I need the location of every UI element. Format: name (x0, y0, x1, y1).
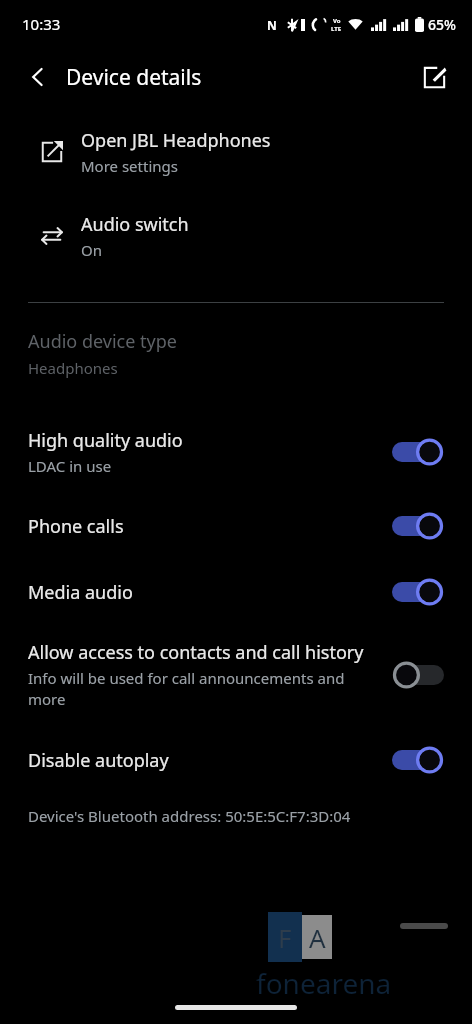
button[interactable]: On (392, 576, 444, 608)
staticText: Disable autoplay (28, 748, 169, 773)
staticText: Allow access to contacts and call histor… (28, 640, 364, 665)
button[interactable]: Media audio (0, 570, 472, 614)
staticText: Audio device type (28, 329, 177, 354)
button[interactable]: Off (392, 659, 444, 691)
staticText: Open JBL Headphones (81, 128, 271, 153)
button[interactable]: On (392, 510, 444, 542)
button[interactable]: Back (16, 55, 60, 99)
button[interactable]: Open JBL Headphones (0, 124, 472, 180)
staticText: Media audio (28, 580, 133, 605)
staticText: LTE (331, 25, 342, 33)
button[interactable]: Disable autoplay (0, 738, 472, 782)
button[interactable]: Rename device (412, 55, 456, 99)
staticText: Device's Bluetooth address: 50:5E:5C:F7:… (28, 806, 351, 826)
button[interactable]: Allow access to contacts and call histor… (0, 634, 472, 716)
staticText: Info will be used for call announcements… (28, 668, 368, 710)
staticText: More settings (81, 156, 178, 176)
staticText: High quality audio (28, 428, 183, 453)
staticText: Phone calls (28, 514, 124, 539)
button[interactable]: High quality audio (0, 422, 472, 482)
staticText: 10:33 (22, 14, 61, 34)
button[interactable]: On (392, 436, 444, 468)
staticText: 65% (428, 15, 456, 34)
button[interactable]: Audio switch (0, 208, 472, 264)
staticText: On (81, 240, 102, 260)
staticText: Headphones (28, 358, 118, 378)
staticText: Device details (66, 63, 202, 92)
staticText: Audio switch (81, 212, 189, 237)
staticText: N (267, 17, 277, 33)
button[interactable]: Phone calls (0, 504, 472, 548)
button[interactable]: On (392, 744, 444, 776)
staticText: F (278, 920, 292, 955)
staticText: A (309, 920, 326, 955)
staticText: Vo (333, 17, 341, 25)
staticText: LDAC in use (28, 456, 112, 476)
staticText: fonearena (256, 964, 392, 1002)
